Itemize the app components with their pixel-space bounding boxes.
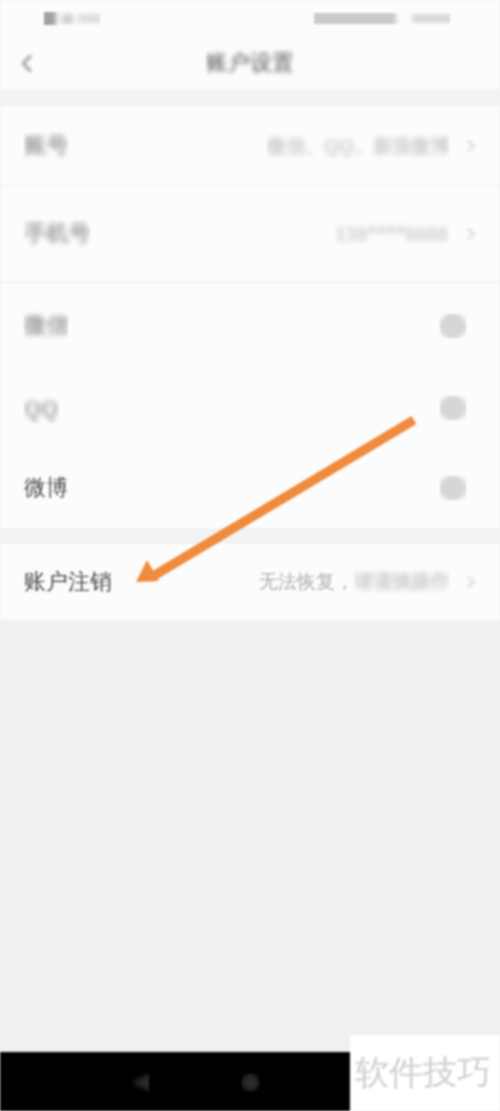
staticText: 账号 xyxy=(24,132,68,160)
staticText: 微信 xyxy=(24,312,68,340)
button[interactable]: QQ xyxy=(0,369,500,447)
button[interactable]: Back xyxy=(114,1056,166,1108)
button[interactable]: 账户注销 xyxy=(0,544,500,620)
button[interactable]: Home xyxy=(224,1056,276,1108)
staticText: 账户注销 xyxy=(24,568,112,596)
staticText: 请谨慎操作 xyxy=(354,570,449,594)
staticText: QQ xyxy=(24,393,59,423)
staticText: 无法恢复， xyxy=(259,570,354,594)
staticText: 138****8888 xyxy=(335,221,449,247)
staticText: 账户设置 xyxy=(206,49,294,77)
staticText: 手机号 xyxy=(24,220,90,248)
button[interactable]: 账号 xyxy=(0,106,500,185)
button[interactable]: 手机号 xyxy=(0,186,500,282)
staticText: 微信、QQ、新浪微博 xyxy=(267,133,449,159)
button[interactable]: Recents xyxy=(334,1056,386,1108)
button[interactable]: Back xyxy=(6,43,46,83)
staticText: 软件技巧 xyxy=(355,1051,491,1094)
button[interactable]: 微信 xyxy=(0,283,500,369)
staticText: 微博 xyxy=(24,474,68,502)
button[interactable]: 微博 xyxy=(0,447,500,528)
